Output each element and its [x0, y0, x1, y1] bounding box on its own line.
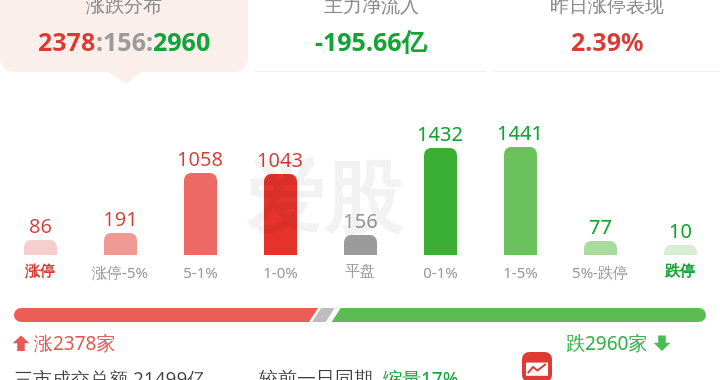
button[interactable] — [584, 241, 617, 255]
staticText: 10 — [669, 217, 692, 244]
staticText: 1-0% — [263, 262, 298, 282]
staticText: 主力净流入 — [324, 0, 419, 18]
staticText: :156: — [96, 24, 153, 58]
staticText: 昨日涨停表现 — [550, 0, 664, 18]
other: 上涨 — [12, 334, 30, 352]
button[interactable]: 上涨 — [12, 330, 116, 356]
button[interactable] — [104, 233, 137, 255]
button[interactable]: 三市成交总额 21499亿 — [14, 366, 459, 380]
staticText: 0-1% — [423, 262, 458, 282]
staticText: 1441 — [497, 119, 543, 146]
button[interactable] — [522, 352, 552, 380]
button[interactable] — [24, 240, 57, 255]
staticText: 平盘 — [345, 262, 375, 281]
staticText: 涨停 — [25, 262, 55, 281]
staticText: 77 — [589, 213, 612, 240]
staticText: 156 — [343, 207, 378, 234]
staticText: 较前一日同期 — [259, 367, 373, 380]
staticText: 缩量17% — [383, 366, 459, 380]
staticText: 5%-跌停 — [572, 262, 628, 282]
button[interactable] — [504, 147, 537, 255]
staticText: 跌2960家 — [566, 330, 648, 356]
staticText: 三市成交总额 21499亿 — [14, 366, 207, 380]
button[interactable] — [14, 308, 706, 322]
button[interactable]: 主力净流入 — [255, 0, 487, 73]
button[interactable] — [344, 235, 377, 255]
staticText: 爱股票 — [246, 150, 476, 260]
button[interactable] — [184, 173, 217, 255]
staticText: -195.66亿 — [315, 24, 427, 58]
button[interactable]: 跌2960家 — [566, 330, 671, 356]
button[interactable] — [264, 174, 297, 255]
button[interactable] — [664, 245, 697, 255]
staticText: 2378 — [38, 24, 96, 58]
staticText: 2.39% — [571, 24, 644, 58]
button[interactable]: 昨日涨停表现 — [494, 0, 720, 73]
staticText: 涨跌分布 — [86, 0, 162, 18]
staticText: 191 — [103, 205, 138, 232]
staticText: 涨2378家 — [34, 330, 116, 356]
staticText: 2960 — [153, 24, 211, 58]
staticText: 1058 — [177, 145, 223, 172]
staticText: APP — [637, 348, 686, 380]
other: 下跌 — [653, 334, 671, 352]
button[interactable]: 涨跌分布 — [0, 0, 248, 72]
staticText: 1-5% — [503, 262, 538, 282]
staticText: 跌停 — [665, 262, 695, 281]
staticText: 涨停-5% — [92, 262, 148, 282]
staticText: 5-1% — [183, 262, 218, 282]
staticText: 86 — [29, 212, 52, 239]
staticText: 1432 — [417, 120, 463, 147]
staticText: 1043 — [257, 146, 303, 173]
staticText: 爱股票 — [556, 348, 637, 380]
button[interactable] — [424, 148, 457, 255]
